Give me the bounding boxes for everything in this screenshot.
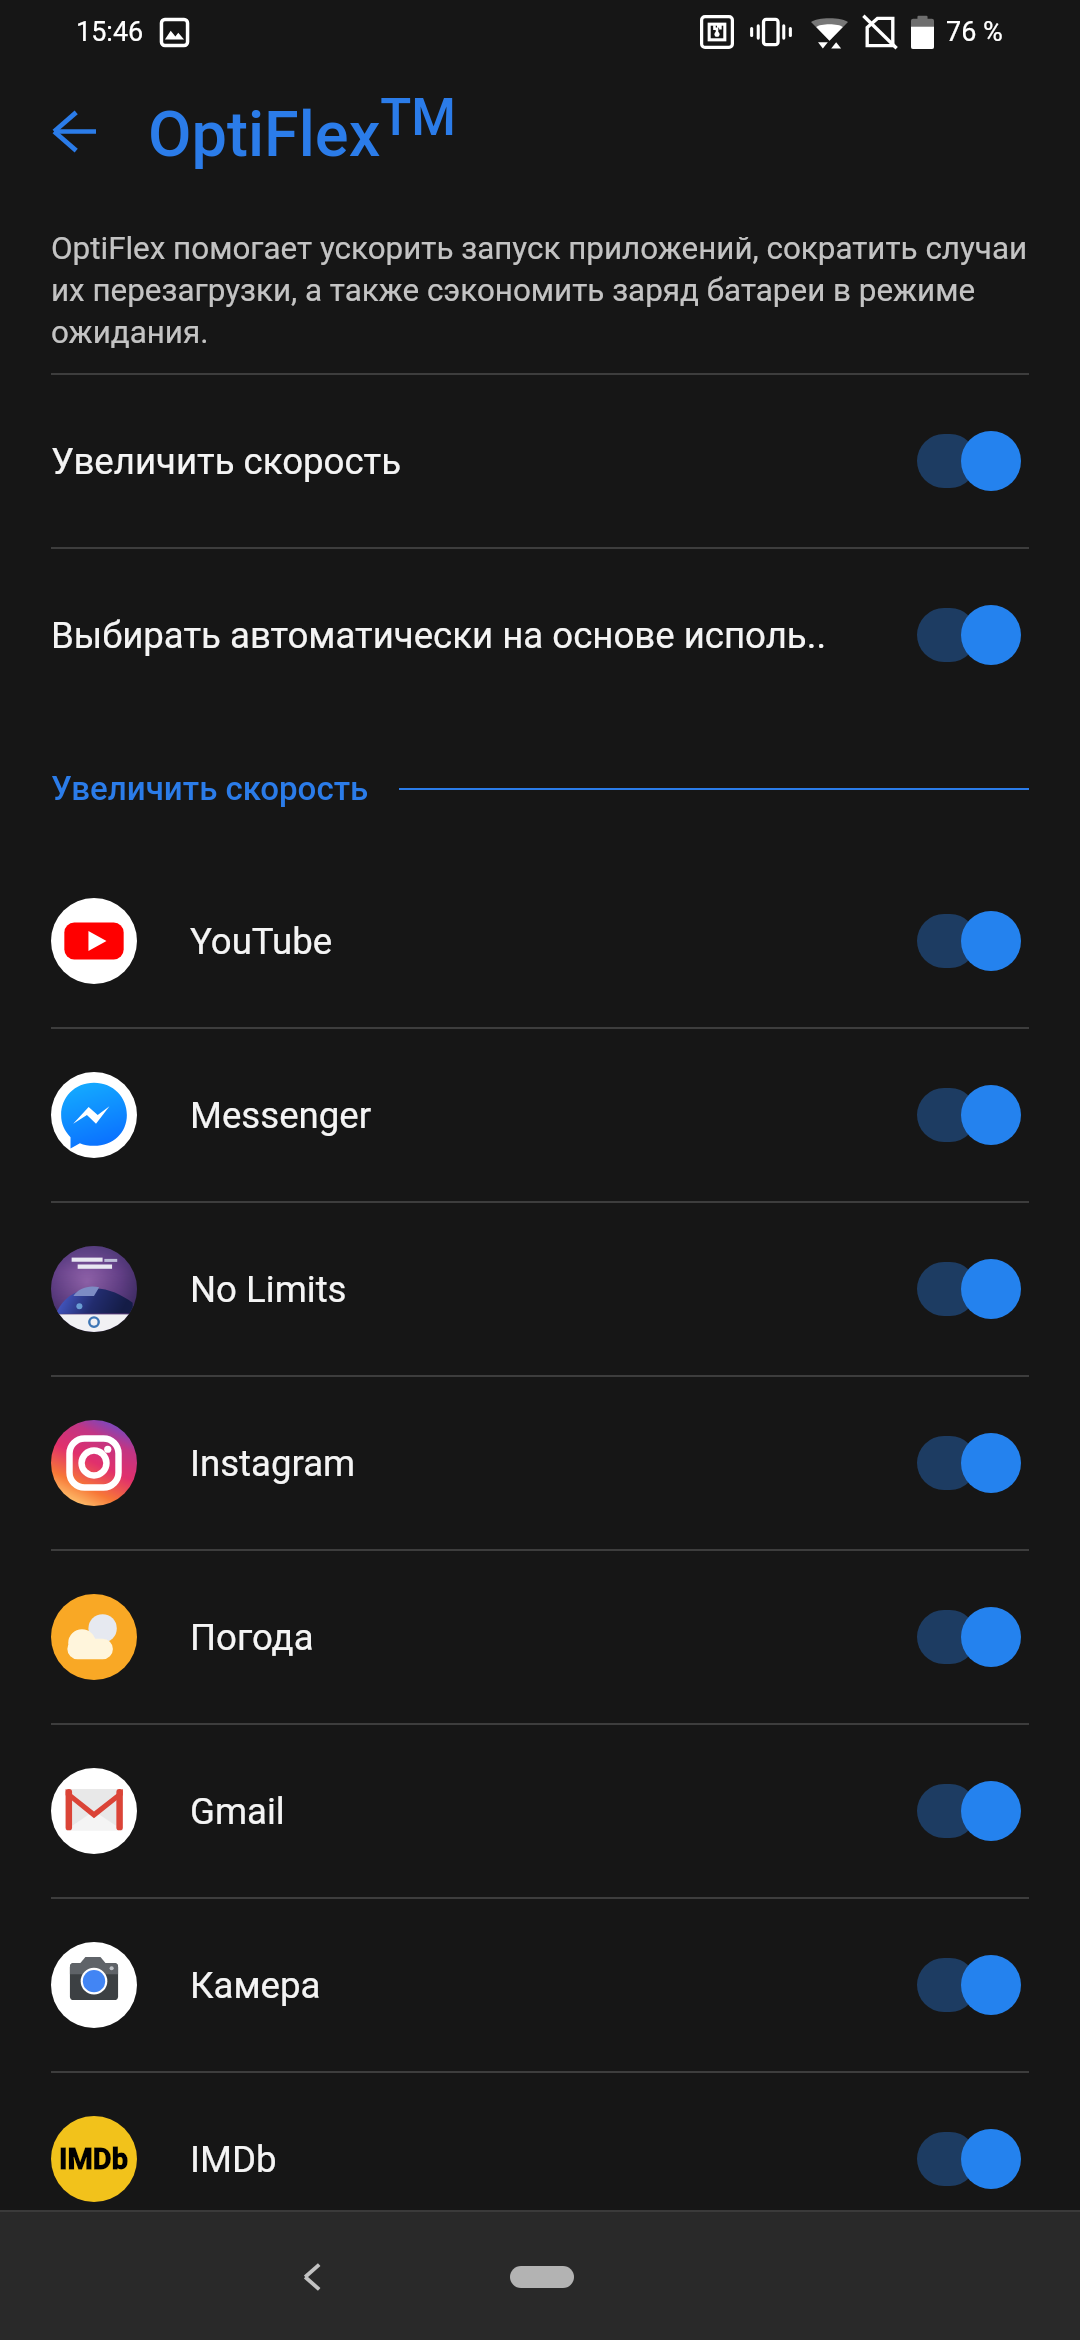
staticText: Увеличить скорость: [51, 440, 402, 483]
staticText: IMDb: [190, 2138, 277, 2181]
staticText: Выбирать автоматически на основе исполь.…: [51, 614, 827, 657]
button[interactable]: Gmail: [0, 1725, 1080, 1897]
button[interactable]: Toggle: [917, 1083, 1021, 1147]
button[interactable]: Toggle: [917, 2127, 1021, 2191]
button[interactable]: Back: [26, 83, 122, 179]
button[interactable]: Toggle: [917, 1605, 1021, 1669]
staticText: IMDb: [59, 2142, 129, 2176]
staticText: Instagram: [190, 1442, 356, 1485]
staticText: No Limits: [190, 1268, 347, 1311]
staticText: Погода: [190, 1616, 314, 1659]
staticText: Увеличить скорость: [51, 769, 369, 808]
button[interactable]: Toggle: [917, 1431, 1021, 1495]
button[interactable]: Back: [266, 2231, 358, 2323]
button[interactable]: IMDb: [0, 2073, 1080, 2245]
button[interactable]: Toggle: [917, 429, 1021, 493]
staticText: OptiFlex помогает ускорить запуск прилож…: [51, 230, 1028, 351]
button[interactable]: Messenger: [0, 1029, 1080, 1201]
staticText: YouTube: [190, 920, 333, 963]
button[interactable]: Toggle: [917, 1257, 1021, 1321]
staticText: 76 %: [946, 16, 1003, 48]
staticText: Gmail: [190, 1790, 285, 1833]
button[interactable]: Home: [492, 2245, 588, 2305]
staticText: 15:46: [76, 16, 144, 48]
button[interactable]: Toggle: [917, 603, 1021, 667]
button[interactable]: Toggle: [917, 1953, 1021, 2017]
button[interactable]: Погода: [0, 1551, 1080, 1723]
button[interactable]: Toggle: [917, 909, 1021, 973]
staticText: Камера: [190, 1964, 321, 2007]
button[interactable]: Камера: [0, 1899, 1080, 2071]
button[interactable]: Instagram: [0, 1377, 1080, 1549]
button[interactable]: Выбирать автоматически на основе исполь.…: [0, 549, 1080, 721]
button[interactable]: YouTube: [0, 855, 1080, 1027]
staticText: OptiFlexTM: [148, 88, 456, 172]
button[interactable]: No Limits: [0, 1203, 1080, 1375]
staticText: Messenger: [190, 1094, 372, 1137]
button[interactable]: Увеличить скорость: [0, 375, 1080, 547]
button[interactable]: Toggle: [917, 1779, 1021, 1843]
